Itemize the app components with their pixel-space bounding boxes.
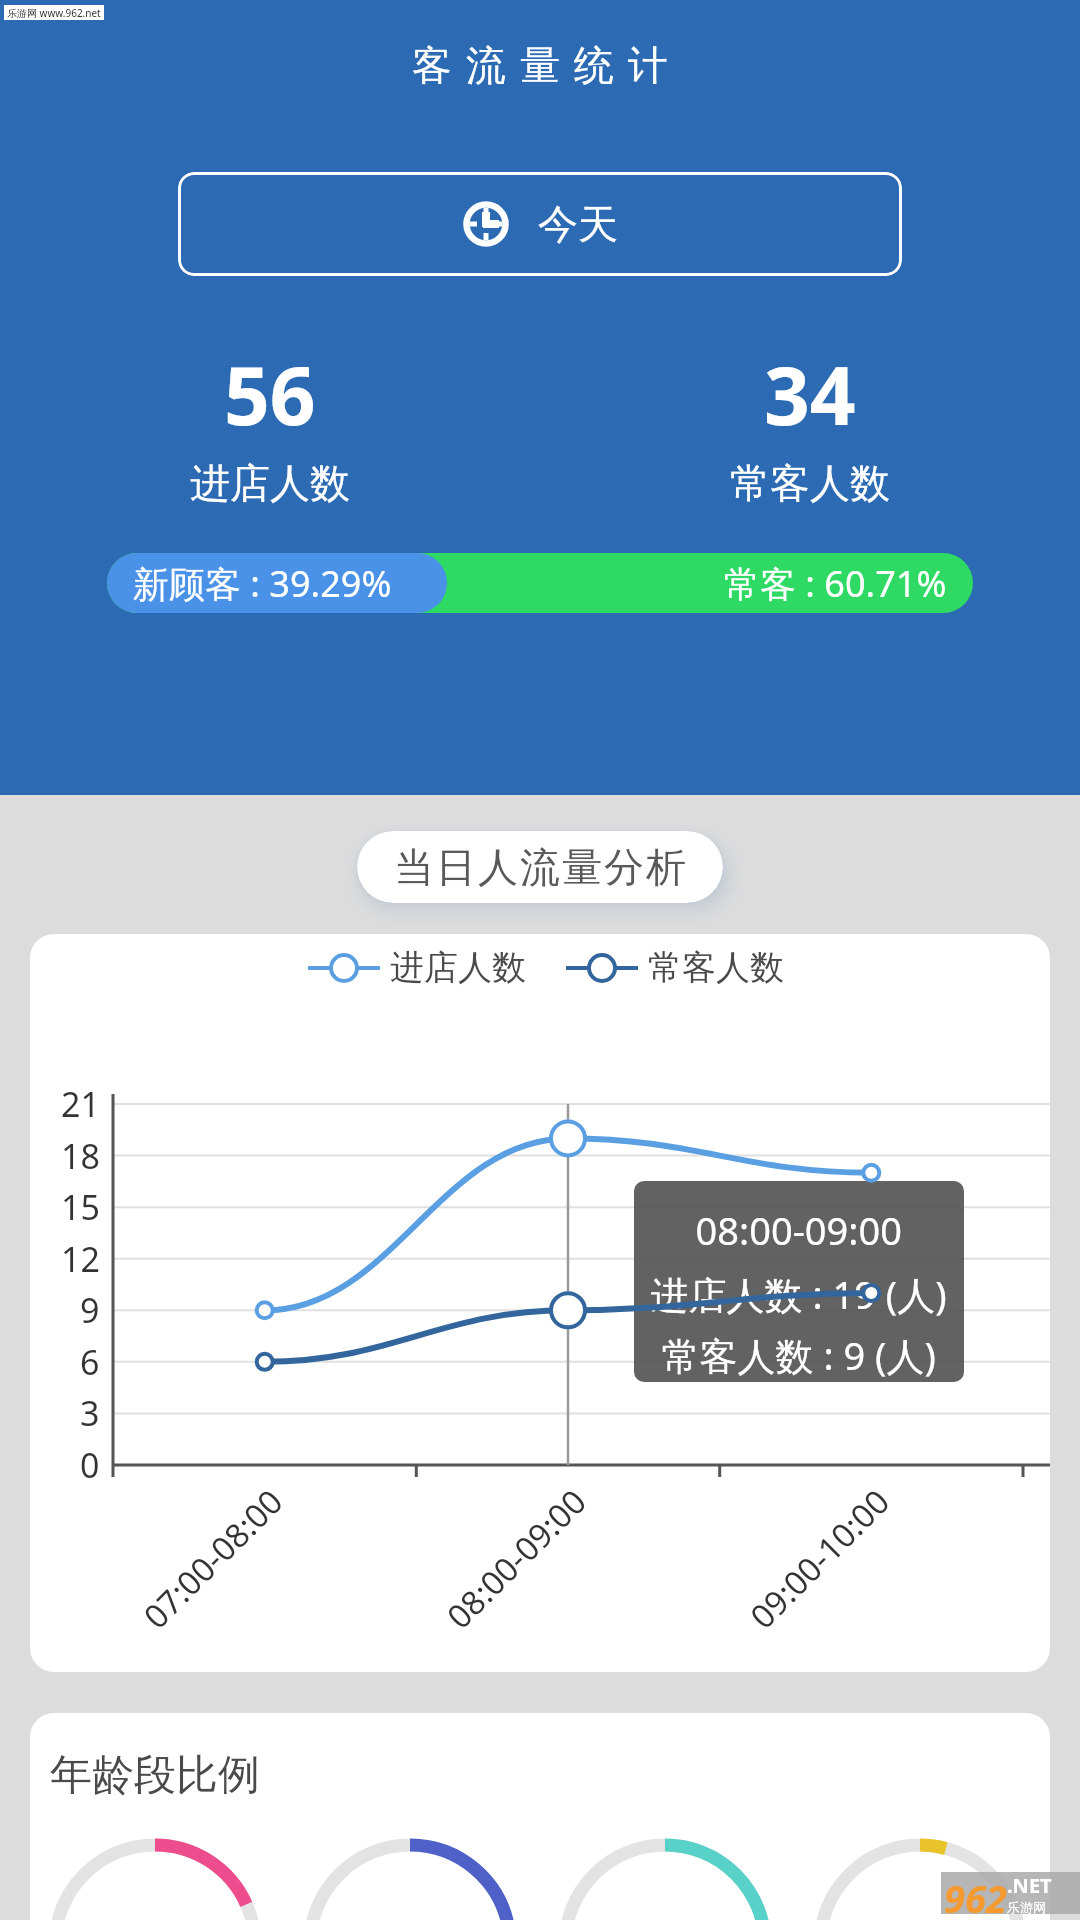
staticText: 常客 : 60.71%: [724, 559, 947, 608]
button[interactable]: 常客 : 60.71%: [107, 553, 973, 613]
staticText: 常客人数: [730, 458, 890, 508]
staticText: 乐游网 www.962.net: [7, 6, 101, 20]
staticText: 进店人数: [190, 458, 350, 508]
staticText: 当日人流量分析: [393, 842, 687, 892]
staticText: 常客人数: [648, 946, 784, 989]
staticText: 年龄段比例: [50, 1749, 260, 1802]
staticText: 进店人数: [390, 946, 526, 989]
staticText: 34: [764, 339, 856, 448]
staticText: .NET: [1007, 1872, 1052, 1899]
button[interactable]: 当日人流量分析: [357, 831, 723, 903]
button[interactable]: 今天: [178, 172, 902, 276]
staticText: 乐游网: [1007, 1899, 1046, 1914]
staticText: 客流量统计: [405, 40, 675, 90]
staticText: 962: [944, 1872, 1007, 1914]
staticText: 新顾客 : 39.29%: [133, 559, 392, 608]
staticText: 56: [224, 339, 316, 448]
staticText: 今天: [538, 199, 618, 249]
